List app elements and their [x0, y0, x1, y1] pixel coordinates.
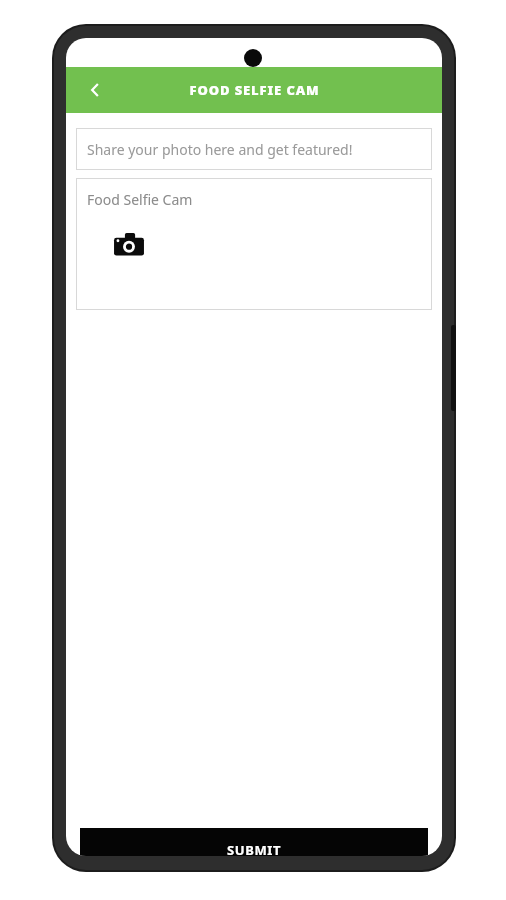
- button[interactable]: Share your photo here and get featured!: [76, 128, 432, 170]
- button[interactable]: Back: [78, 73, 112, 107]
- staticText: SUBMIT: [227, 841, 282, 856]
- staticText: Food Selfie Cam: [87, 190, 193, 209]
- staticText: Share your photo here and get featured!: [87, 140, 353, 159]
- button[interactable]: SUBMIT: [80, 828, 428, 856]
- button[interactable]: Food Selfie Cam, take photo: [76, 178, 432, 310]
- staticText: FOOD SELFIE CAM: [189, 81, 320, 99]
